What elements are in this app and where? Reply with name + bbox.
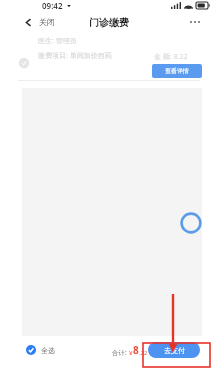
- button[interactable]: More options: [186, 13, 204, 31]
- button[interactable]: Back: [24, 17, 55, 27]
- staticText: 查看详情: [165, 67, 189, 75]
- button[interactable]: 去支付: [148, 342, 200, 358]
- staticText: 门诊缴费: [89, 16, 129, 29]
- other: Back: [24, 18, 33, 27]
- staticText: .22: [139, 349, 148, 357]
- staticText: 全选: [41, 346, 55, 355]
- staticText: 关闭: [39, 17, 55, 27]
- staticText: 09:42: [42, 0, 63, 11]
- button[interactable]: 全选: [26, 345, 55, 355]
- staticText: 医生: 管理员: [38, 36, 77, 46]
- staticText: 金 额: 8.22: [154, 52, 188, 62]
- other: Loading: [180, 212, 202, 234]
- button[interactable]: 查看详情: [152, 64, 202, 78]
- staticText: 缴费项目: 单间加价西药: [38, 51, 112, 61]
- staticText: ¥: [129, 349, 133, 357]
- staticText: 8: [133, 343, 139, 357]
- staticText: 合计:: [112, 348, 129, 357]
- staticText: 去支付: [164, 346, 185, 355]
